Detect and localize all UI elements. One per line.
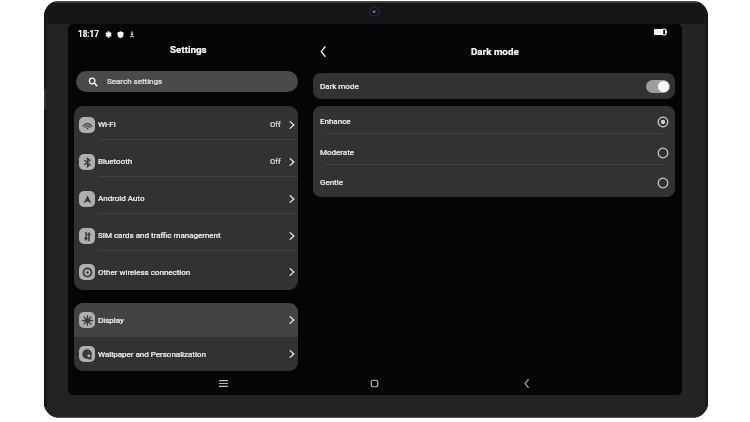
button[interactable]: Gentle (313, 168, 675, 197)
button[interactable]: Search settings (76, 71, 298, 92)
staticText: Off (270, 120, 281, 129)
button[interactable]: Recent apps (213, 373, 233, 393)
button[interactable]: Back (516, 373, 536, 393)
button[interactable]: Wi-Fi (74, 106, 298, 143)
staticText: Enhance (320, 117, 351, 126)
staticText: Wallpaper and Personalization (98, 350, 206, 359)
staticText: Bluetooth (98, 157, 133, 166)
button[interactable]: Android Auto (74, 180, 298, 217)
button[interactable]: Display (74, 303, 298, 337)
button[interactable]: Enhance (313, 106, 675, 137)
button[interactable]: Other wireless connection (74, 254, 298, 290)
staticText: Display (98, 316, 124, 325)
staticText: Gentle (320, 178, 343, 187)
staticText: Dark mode (320, 82, 359, 91)
staticText: Other wireless connection (98, 268, 191, 277)
button[interactable]: Bluetooth (74, 143, 298, 180)
button[interactable]: Moderate (313, 137, 675, 168)
button[interactable]: Wallpaper and Personalization (74, 337, 298, 371)
staticText: 18:17 (78, 29, 99, 39)
staticText: Dark mode (471, 46, 519, 57)
staticText: Moderate (320, 148, 355, 157)
staticText: Off (270, 157, 281, 166)
staticText: SIM cards and traffic management (98, 231, 221, 240)
button[interactable]: SIM cards and traffic management (74, 217, 298, 254)
button[interactable]: Dark mode (313, 73, 675, 99)
staticText: Settings (170, 44, 207, 55)
staticText: Android Auto (98, 194, 145, 203)
button[interactable]: Back (313, 42, 332, 61)
staticText: Search settings (107, 77, 163, 86)
staticText: Wi-Fi (98, 120, 116, 129)
button[interactable]: Home (364, 373, 384, 393)
